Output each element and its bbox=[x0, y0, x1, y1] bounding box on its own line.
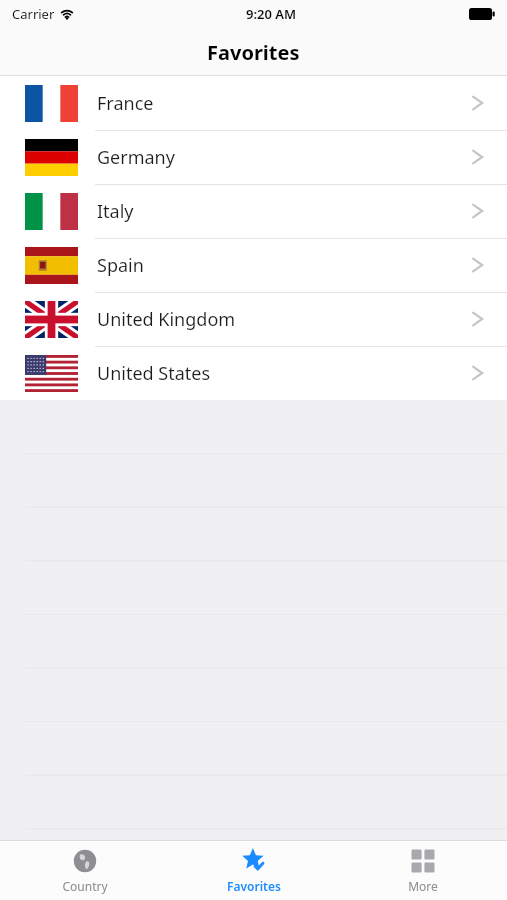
staticText: United Kingdom bbox=[97, 307, 236, 332]
staticText: United States bbox=[97, 361, 211, 386]
button[interactable]: France bbox=[0, 76, 507, 130]
button[interactable]: Italy bbox=[0, 184, 507, 238]
button[interactable]: Germany bbox=[0, 130, 507, 184]
staticText: Carrier bbox=[12, 5, 55, 23]
staticText: More bbox=[408, 878, 438, 894]
button[interactable]: United States bbox=[0, 346, 507, 400]
staticText: France bbox=[97, 91, 154, 116]
button[interactable]: More bbox=[338, 841, 507, 900]
staticText: Country bbox=[62, 878, 108, 894]
staticText: Favorites bbox=[227, 878, 281, 894]
staticText: Spain bbox=[97, 253, 144, 278]
staticText: Italy bbox=[97, 199, 134, 224]
button[interactable]: United Kingdom bbox=[0, 292, 507, 346]
button[interactable]: Country bbox=[0, 841, 169, 900]
button[interactable]: Spain bbox=[0, 238, 507, 292]
staticText: Germany bbox=[97, 145, 175, 170]
staticText: Favorites bbox=[207, 39, 300, 66]
staticText: 9:20 AM bbox=[246, 5, 297, 23]
button[interactable]: Favorites bbox=[169, 841, 338, 900]
